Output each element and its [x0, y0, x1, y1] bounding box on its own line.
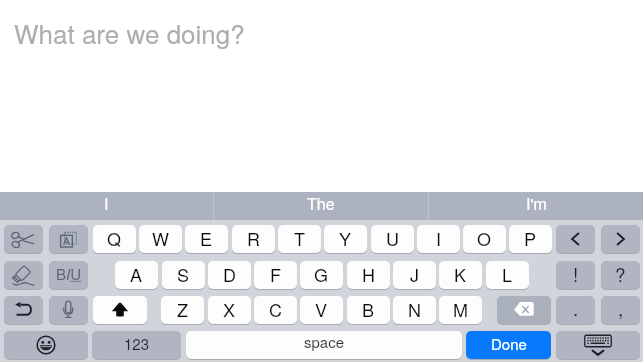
staticText: !	[573, 261, 579, 287]
staticText: BIU	[56, 263, 82, 284]
button[interactable]: U	[371, 225, 414, 253]
staticText: 123	[124, 333, 150, 354]
button[interactable]: S	[162, 261, 205, 289]
staticText: U	[386, 225, 399, 251]
staticText: X	[223, 296, 236, 322]
staticText: M	[453, 296, 468, 322]
button[interactable]: O	[463, 225, 506, 253]
button[interactable]: R	[232, 225, 275, 253]
button[interactable]: I	[0, 192, 213, 221]
button[interactable]: Y	[324, 225, 367, 253]
button[interactable]: Hide keyboard	[556, 331, 640, 359]
staticText: D	[223, 261, 236, 287]
button[interactable]: H	[347, 261, 390, 289]
button[interactable]: A	[115, 261, 158, 289]
button[interactable]: Q	[93, 225, 136, 253]
staticText: L	[502, 261, 513, 287]
button[interactable]: Bold italic underline	[49, 261, 88, 289]
button[interactable]: F	[254, 261, 297, 289]
staticText: I	[436, 225, 442, 251]
button[interactable]: Undo	[4, 296, 43, 324]
button[interactable]: P	[509, 225, 552, 253]
button[interactable]: G	[300, 261, 343, 289]
button[interactable]: J	[393, 261, 436, 289]
staticText: R	[247, 225, 260, 251]
button[interactable]: B	[347, 296, 390, 324]
staticText: S	[177, 261, 190, 287]
staticText: F	[270, 261, 281, 287]
button[interactable]: ?	[601, 261, 640, 289]
button[interactable]: C	[254, 296, 297, 324]
button[interactable]: I	[417, 225, 460, 253]
button[interactable]: T	[278, 225, 321, 253]
staticText: E	[200, 225, 213, 251]
button[interactable]: Next	[601, 225, 640, 253]
button[interactable]: W	[139, 225, 182, 253]
staticText: T	[294, 225, 305, 251]
staticText: Done	[491, 333, 527, 354]
staticText: space	[304, 331, 345, 352]
staticText: B	[362, 296, 375, 322]
button[interactable]: The	[214, 192, 428, 221]
staticText: I'm	[526, 192, 547, 215]
staticText: P	[524, 225, 537, 251]
button[interactable]: Previous	[556, 225, 595, 253]
staticText: .	[573, 296, 579, 321]
staticText: V	[315, 296, 328, 322]
button[interactable]: Z	[161, 296, 204, 324]
staticText: The	[307, 192, 335, 215]
staticText: K	[454, 261, 467, 287]
staticText: Y	[339, 225, 352, 251]
staticText: C	[269, 296, 282, 322]
button[interactable]: .	[556, 296, 595, 324]
staticText: What are we doing?	[14, 14, 245, 51]
button[interactable]: Shift	[93, 296, 147, 324]
staticText: Z	[177, 296, 188, 322]
button[interactable]: Highlight	[4, 261, 43, 289]
staticText: O	[477, 225, 492, 251]
button[interactable]: I'm	[429, 192, 643, 221]
button[interactable]: K	[439, 261, 482, 289]
staticText: H	[362, 261, 375, 287]
button[interactable]: E	[185, 225, 228, 253]
button[interactable]: Cut	[4, 225, 43, 253]
button[interactable]: ,	[601, 296, 640, 324]
button[interactable]: Dictation	[49, 296, 88, 324]
button[interactable]: N	[393, 296, 436, 324]
button[interactable]: Done	[466, 331, 551, 359]
staticText: ,	[618, 296, 624, 321]
button[interactable]: L	[486, 261, 529, 289]
staticText: G	[314, 261, 329, 287]
staticText: Q	[107, 225, 122, 251]
button[interactable]: D	[208, 261, 251, 289]
staticText: N	[408, 296, 421, 322]
staticText: A	[130, 261, 143, 287]
button[interactable]: Select	[49, 225, 88, 253]
button[interactable]: V	[300, 296, 343, 324]
button[interactable]: space	[186, 331, 462, 359]
button[interactable]: Emoji	[4, 331, 88, 359]
button[interactable]: X	[208, 296, 251, 324]
button[interactable]: !	[556, 261, 595, 289]
button[interactable]: M	[439, 296, 482, 324]
staticText: J	[410, 261, 419, 287]
staticText: I	[104, 192, 109, 215]
button[interactable]: Delete	[497, 296, 551, 324]
staticText: W	[152, 225, 169, 251]
staticText: ?	[615, 261, 626, 287]
button[interactable]: 123	[92, 331, 181, 359]
